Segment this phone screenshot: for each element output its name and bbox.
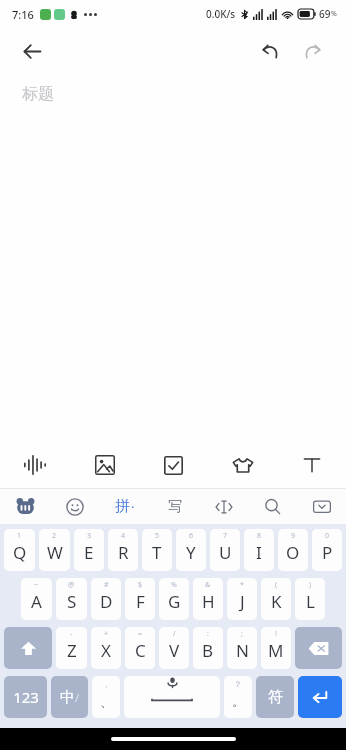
button[interactable]: 2 [39, 529, 70, 571]
button[interactable]: 0 [312, 529, 342, 571]
button[interactable]: - [56, 627, 87, 669]
button[interactable]: Space [124, 676, 220, 718]
button[interactable]: Undo [252, 33, 288, 69]
staticText: 69 [319, 7, 331, 21]
button[interactable]: Pinyin [100, 489, 150, 524]
button[interactable]: Cursor [199, 489, 248, 524]
button[interactable]: Checklist [139, 442, 208, 488]
button[interactable]: : [193, 627, 223, 669]
button[interactable]: ; [227, 627, 257, 669]
staticText: 7 [223, 531, 228, 541]
button[interactable]: * [227, 578, 257, 620]
button[interactable]: 6 [176, 529, 206, 571]
staticText: ! [275, 629, 277, 639]
staticText: ; [241, 629, 243, 639]
staticText: 符 [268, 688, 283, 707]
button[interactable]: Style [208, 442, 277, 488]
staticText: · [131, 498, 135, 516]
staticText: A [31, 590, 42, 613]
button[interactable]: = [125, 627, 155, 669]
staticText: 5 [155, 531, 160, 541]
staticText: M [268, 639, 284, 662]
button[interactable]: ？ [224, 676, 252, 718]
staticText: 8 [257, 531, 262, 541]
staticText: 6 [189, 531, 194, 541]
staticText: 拼 [115, 497, 130, 516]
button[interactable]: 符 [256, 676, 294, 718]
button[interactable]: 4 [108, 529, 138, 571]
button[interactable]: Audio [0, 442, 70, 488]
staticText: ( [275, 580, 278, 590]
button[interactable]: Back [12, 31, 52, 71]
staticText: 写 [168, 498, 182, 516]
button[interactable]: $ [125, 578, 155, 620]
staticText: * [240, 580, 244, 590]
button[interactable]: 中 [51, 676, 88, 718]
button[interactable]: Text [277, 442, 346, 488]
button[interactable]: # [91, 578, 121, 620]
staticText: 123 [13, 687, 39, 707]
button[interactable]: ) [295, 578, 325, 620]
staticText: P [322, 541, 333, 564]
button[interactable]: Shift [4, 627, 52, 669]
staticText: O [286, 541, 300, 564]
button[interactable]: 7 [210, 529, 240, 571]
button[interactable]: Image [70, 442, 139, 488]
button[interactable]: 5 [142, 529, 172, 571]
staticText: 中 [60, 688, 75, 707]
staticText: 0.0K/s [206, 7, 236, 21]
staticText: W [47, 541, 63, 564]
staticText: B [202, 639, 214, 662]
staticText: : [207, 629, 209, 639]
button[interactable]: 3 [74, 529, 104, 571]
staticText: - [70, 629, 73, 639]
staticText: / [173, 629, 176, 639]
staticText: Q [13, 541, 27, 564]
button[interactable]: Delete [295, 627, 342, 669]
staticText: 。 [232, 693, 245, 709]
button[interactable]: + [91, 627, 121, 669]
button[interactable]: 8 [244, 529, 274, 571]
button[interactable]: ( [261, 578, 291, 620]
staticText: # [104, 580, 109, 590]
button[interactable]: ， [92, 676, 120, 718]
button[interactable]: Baidu [0, 489, 50, 524]
staticText: ~ [34, 580, 39, 590]
staticText: ) [309, 580, 312, 590]
button[interactable]: Emoji [50, 489, 100, 524]
staticText: + [104, 629, 109, 639]
button[interactable]: Redo [294, 33, 330, 69]
button[interactable]: @ [56, 578, 87, 620]
staticText: % [331, 9, 337, 19]
staticText: ？ [234, 679, 242, 689]
button[interactable]: & [193, 578, 223, 620]
staticText: L [306, 590, 315, 613]
staticText: & [205, 580, 211, 590]
staticText: S [67, 590, 77, 613]
staticText: H [202, 590, 215, 613]
button[interactable]: % [159, 578, 189, 620]
staticText: 7:16 [12, 7, 34, 22]
staticText: G [168, 590, 181, 613]
button[interactable]: 123 [4, 676, 47, 718]
button[interactable]: ! [261, 627, 291, 669]
staticText: = [138, 629, 143, 639]
staticText: % [171, 580, 177, 590]
button[interactable]: Search [248, 489, 297, 524]
staticText: C [135, 639, 146, 662]
button[interactable]: ~ [21, 578, 52, 620]
button[interactable]: / [159, 627, 189, 669]
staticText: E [84, 541, 94, 564]
staticText: $ [138, 580, 143, 590]
button[interactable]: 9 [278, 529, 308, 571]
staticText: V [169, 639, 180, 662]
button[interactable]: Enter [298, 676, 342, 718]
staticText: Y [186, 541, 196, 564]
staticText: X [101, 639, 111, 662]
button[interactable]: Collapse [297, 489, 346, 524]
staticText: 9 [291, 531, 296, 541]
staticText: K [271, 590, 282, 613]
button[interactable]: Handwrite [150, 489, 199, 524]
button[interactable]: 1 [4, 529, 35, 571]
staticText: 3 [87, 531, 92, 541]
